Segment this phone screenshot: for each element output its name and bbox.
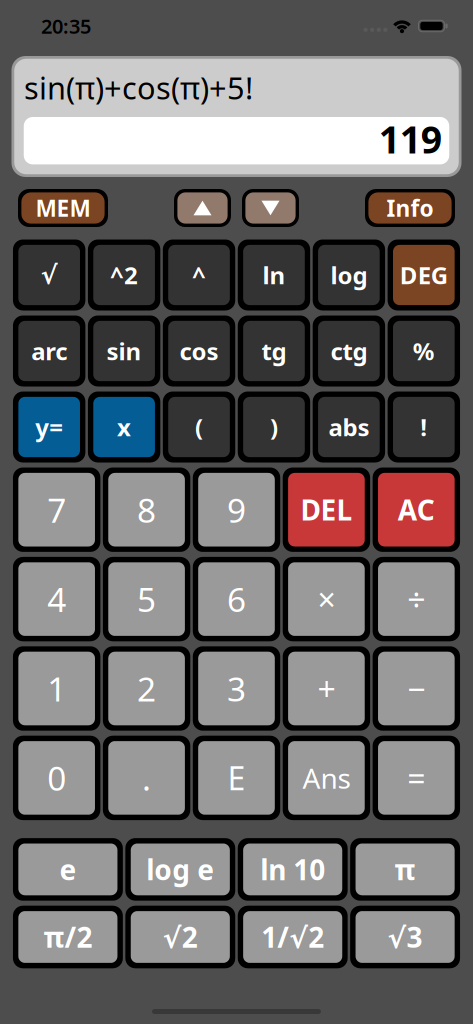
button[interactable]: DEG [386, 237, 461, 313]
staticText: √3 [388, 918, 423, 956]
staticText: abs [328, 411, 369, 443]
staticText: ( [195, 411, 203, 443]
button[interactable]: % [386, 313, 461, 389]
staticText: e [59, 851, 76, 888]
button[interactable]: 4 [12, 554, 102, 644]
staticText: Info [386, 193, 433, 223]
staticText: ^ [192, 259, 206, 291]
staticText: sin(π)+cos(π)+5! [24, 67, 253, 108]
button[interactable]: DEL [281, 465, 371, 554]
button[interactable]: y= [12, 389, 87, 465]
staticText: cos [179, 335, 218, 367]
staticText: 9 [227, 488, 246, 532]
staticText: y= [35, 411, 63, 443]
button[interactable]: ln 10 [236, 836, 349, 903]
button[interactable]: cos [162, 313, 236, 389]
button[interactable]: Scroll down [242, 189, 299, 227]
button[interactable]: 3 [191, 644, 281, 733]
staticText: ctg [330, 335, 367, 367]
staticText: log e [146, 851, 214, 888]
staticText: ln [262, 259, 285, 291]
staticText: 5 [137, 577, 156, 621]
staticText: 119 [379, 114, 442, 164]
button[interactable]: 8 [102, 465, 191, 554]
button[interactable]: + [281, 644, 371, 733]
button[interactable]: 7 [12, 465, 102, 554]
staticText: √2 [163, 918, 198, 956]
button[interactable]: x [87, 389, 161, 465]
button[interactable]: π [349, 836, 461, 903]
button[interactable]: log e [124, 836, 236, 903]
staticText: 2 [137, 666, 156, 711]
staticText: log [330, 259, 367, 291]
staticText: 1 [47, 666, 66, 711]
staticText: = [407, 757, 425, 799]
staticText: π/2 [43, 918, 92, 956]
button[interactable]: π/2 [12, 903, 124, 971]
staticText: 0 [47, 756, 66, 800]
button[interactable]: log [311, 237, 386, 313]
button[interactable]: 2 [102, 644, 191, 733]
staticText: 7 [47, 488, 66, 532]
button[interactable]: × [281, 554, 371, 644]
button[interactable]: 1 [12, 644, 102, 733]
staticText: − [407, 667, 425, 710]
button[interactable]: . [102, 733, 191, 823]
staticText: % [413, 335, 435, 367]
button[interactable]: abs [311, 389, 386, 465]
button[interactable]: √3 [349, 903, 461, 971]
button[interactable]: ! [386, 389, 461, 465]
button[interactable]: AC [371, 465, 461, 554]
button[interactable]: = [371, 733, 461, 823]
button[interactable]: ÷ [371, 554, 461, 644]
button[interactable]: 5 [102, 554, 191, 644]
button[interactable]: MEM [18, 189, 108, 227]
staticText: x [117, 411, 131, 443]
staticText: DEG [400, 259, 448, 291]
staticText: √ [41, 261, 58, 289]
staticText: E [227, 757, 245, 799]
staticText: 4 [47, 577, 66, 621]
staticText: AC [398, 491, 435, 528]
button[interactable]: Info [365, 189, 455, 227]
button[interactable]: 6 [191, 554, 281, 644]
staticText: arc [31, 335, 67, 367]
staticText: 20:35 [41, 13, 91, 39]
staticText: 8 [137, 488, 156, 532]
button[interactable]: ctg [311, 313, 386, 389]
button[interactable]: √ [12, 237, 87, 313]
staticText: 6 [227, 577, 246, 621]
staticText: ÷ [407, 578, 425, 620]
staticText: tg [261, 335, 286, 367]
button[interactable]: sin [87, 313, 161, 389]
button[interactable]: − [371, 644, 461, 733]
button[interactable]: tg [236, 313, 311, 389]
staticText: ln 10 [260, 851, 325, 888]
button[interactable]: E [191, 733, 281, 823]
button[interactable]: 1/√2 [236, 903, 349, 971]
staticText: sin [107, 335, 142, 367]
staticText: ) [270, 411, 278, 443]
staticText: ^2 [110, 259, 138, 291]
staticText: MEM [35, 193, 90, 223]
button[interactable]: arc [12, 313, 87, 389]
button[interactable]: 9 [191, 465, 281, 554]
staticText: 1/√2 [261, 918, 324, 956]
button[interactable]: ) [236, 389, 311, 465]
button[interactable]: Scroll up [174, 189, 231, 227]
button[interactable]: ^2 [87, 237, 161, 313]
button[interactable]: √2 [124, 903, 236, 971]
staticText: ! [420, 411, 427, 443]
button[interactable]: ln [236, 237, 311, 313]
staticText: . [142, 756, 151, 800]
button[interactable]: Ans [281, 733, 371, 823]
staticText: × [317, 578, 335, 620]
button[interactable]: ( [162, 389, 236, 465]
staticText: + [317, 667, 335, 710]
button[interactable]: ^ [162, 237, 236, 313]
button[interactable]: e [12, 836, 124, 903]
staticText: DEL [300, 491, 352, 528]
staticText: π [395, 851, 416, 888]
staticText: Ans [302, 759, 350, 796]
button[interactable]: 0 [12, 733, 102, 823]
